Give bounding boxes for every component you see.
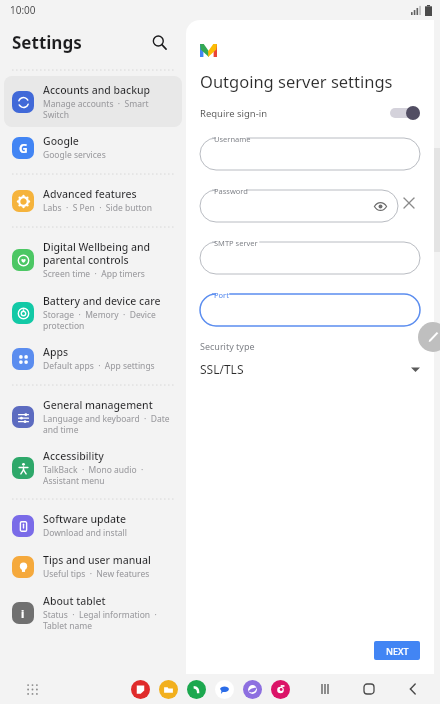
button[interactable]: General management (0, 391, 186, 442)
staticText: Port (214, 290, 229, 300)
staticText: Download and install (43, 527, 127, 539)
button[interactable]: SSL/TLS (200, 361, 420, 377)
button[interactable]: Messages (215, 680, 234, 699)
staticText: Password (214, 186, 248, 196)
button[interactable]: Accessibility (0, 442, 186, 493)
staticText: 10:00 (10, 3, 36, 17)
button[interactable]: G (0, 127, 186, 168)
staticText: Language and keyboard · Date and time (43, 413, 178, 435)
button[interactable]: Edit (418, 322, 440, 352)
staticText: Accessibility (43, 449, 104, 463)
staticText: Manage accounts · Smart Switch (43, 98, 174, 120)
button[interactable]: Username (200, 132, 420, 170)
staticText: Storage · Memory · Device protection (43, 309, 178, 331)
staticText: Security type (200, 340, 255, 352)
staticText: G (19, 140, 28, 156)
button[interactable]: SMTP server (200, 236, 420, 274)
staticText: Google services (43, 149, 106, 161)
staticText: SSL/TLS (200, 361, 411, 377)
button[interactable]: Tips and user manual (0, 546, 186, 587)
staticText: Useful tips · New features (43, 568, 150, 580)
button[interactable]: Phone (187, 680, 206, 699)
staticText: Labs · S Pen · Side button (43, 202, 152, 214)
button[interactable]: Show password (372, 198, 388, 214)
staticText: General management (43, 398, 153, 412)
button[interactable]: Samsung Notes (131, 680, 150, 699)
button[interactable]: Apps (0, 338, 186, 379)
button[interactable]: Require sign-in (200, 106, 420, 120)
staticText: SMTP server (214, 238, 258, 248)
button[interactable]: NEXT (374, 641, 420, 660)
button[interactable]: Digital Wellbeing and parental controls (0, 233, 186, 287)
staticText: Username (214, 134, 251, 144)
button[interactable]: Accounts and backup (4, 76, 182, 127)
button[interactable]: Software update (0, 505, 186, 546)
button[interactable]: Internet (243, 680, 262, 699)
staticText: Digital Wellbeing and parental controls (43, 240, 178, 267)
staticText: Battery and device care (43, 294, 161, 308)
staticText: i (21, 606, 25, 621)
staticText: Require sign-in (200, 107, 390, 120)
staticText: Outgoing server settings (200, 70, 393, 92)
staticText: NEXT (386, 645, 409, 657)
button[interactable]: Port (200, 288, 420, 326)
button[interactable]: Password (200, 184, 398, 222)
staticText: Accounts and backup (43, 83, 151, 97)
staticText: Settings (12, 31, 82, 54)
staticText: TalkBack · Mono audio · Assistant menu (43, 464, 178, 486)
button[interactable]: Camera (271, 680, 290, 699)
button[interactable]: Advanced features (0, 180, 186, 221)
staticText: Default apps · App settings (43, 360, 155, 372)
button[interactable]: Apps (22, 679, 42, 699)
button[interactable]: Search (146, 29, 172, 55)
button[interactable]: Home (360, 680, 378, 698)
button[interactable]: Battery and device care (0, 287, 186, 338)
staticText: Advanced features (43, 187, 137, 201)
button[interactable]: Recents (316, 680, 334, 698)
staticText: Screen time · App timers (43, 268, 145, 280)
staticText: About tablet (43, 594, 106, 608)
staticText: Tips and user manual (43, 553, 151, 567)
staticText: Software update (43, 512, 127, 526)
button[interactable]: Clear (398, 192, 420, 214)
staticText: Apps (43, 345, 69, 359)
staticText: Google (43, 134, 79, 148)
staticText: Status · Legal information · Tablet name (43, 609, 178, 631)
button[interactable]: My Files (159, 680, 178, 699)
button[interactable]: i (0, 587, 186, 638)
button[interactable]: Back (404, 680, 422, 698)
